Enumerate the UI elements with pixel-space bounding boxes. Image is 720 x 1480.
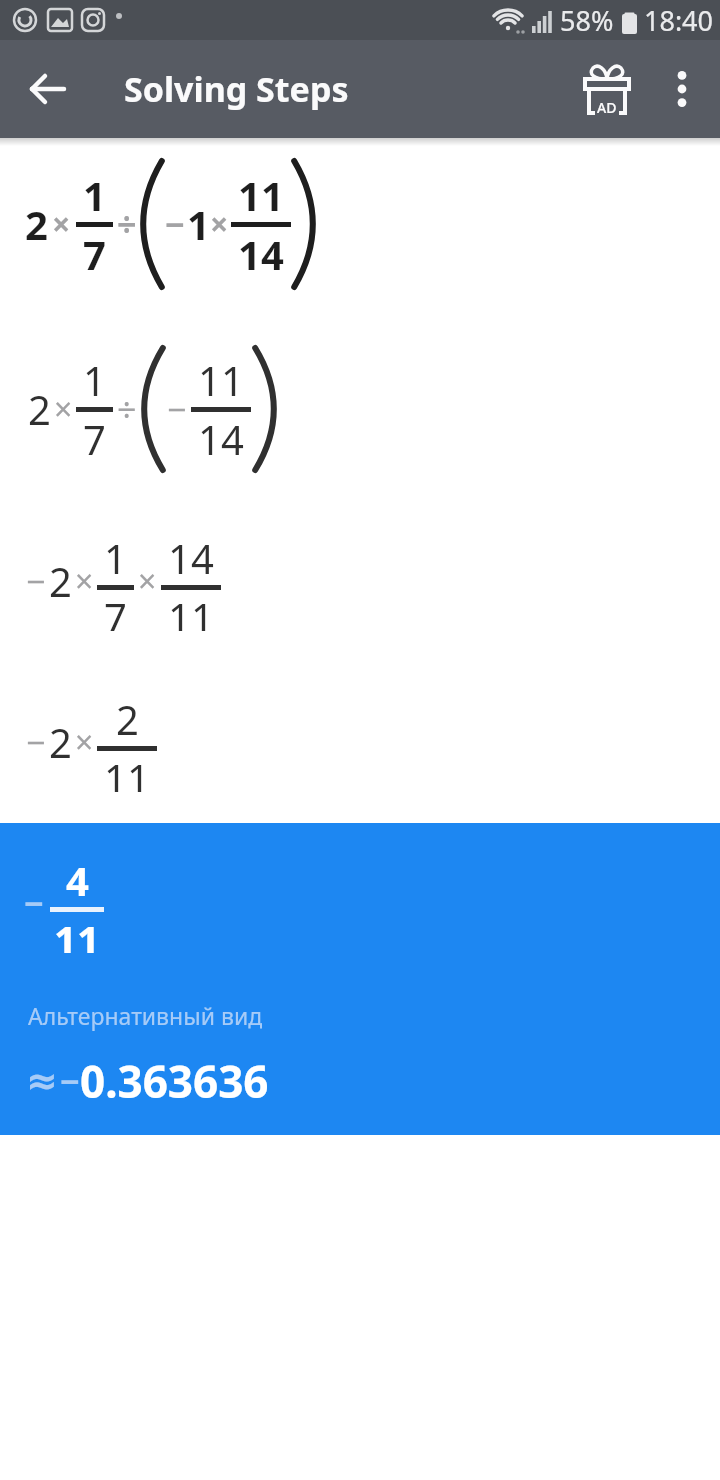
staticText: −: [165, 201, 185, 247]
staticText: Альтернативный вид: [28, 1000, 263, 1031]
staticText: 11: [198, 353, 244, 407]
staticText: −: [26, 558, 46, 604]
staticText: 11: [54, 912, 100, 953]
button[interactable]: AD: [576, 58, 638, 120]
staticText: 2: [49, 715, 72, 769]
staticText: 7: [83, 227, 106, 281]
staticText: −: [26, 719, 46, 765]
staticText: ×: [138, 559, 157, 603]
button[interactable]: [22, 63, 74, 115]
staticText: 2: [116, 692, 139, 746]
staticText: 11: [168, 590, 214, 631]
staticText: 11: [238, 168, 284, 222]
staticText: 2: [25, 197, 48, 251]
staticText: 0.363636: [80, 1051, 269, 1111]
staticText: 1: [104, 531, 127, 585]
staticText: ×: [210, 202, 229, 246]
staticText: Solving Steps: [124, 66, 349, 112]
staticText: ÷: [117, 201, 137, 247]
staticText: −: [60, 1058, 80, 1104]
staticText: ×: [75, 720, 94, 764]
staticText: 2: [28, 382, 51, 436]
staticText: 11: [104, 751, 150, 792]
staticText: 58%: [560, 2, 614, 39]
staticText: AD: [597, 98, 617, 117]
staticText: ÷: [117, 386, 137, 432]
staticText: −: [24, 880, 44, 926]
staticText: 14: [198, 412, 244, 466]
staticText: ≈: [26, 1059, 58, 1103]
staticText: 2: [49, 554, 72, 608]
staticText: 14: [238, 227, 284, 281]
button[interactable]: −: [0, 823, 720, 1135]
staticText: ×: [54, 387, 73, 431]
staticText: 7: [83, 412, 106, 466]
staticText: 18:40: [644, 2, 714, 39]
staticText: ×: [52, 202, 71, 246]
staticText: 1: [187, 197, 210, 251]
staticText: −: [167, 386, 187, 432]
staticText: 1: [83, 353, 106, 407]
staticText: 1: [83, 168, 106, 222]
staticText: 4: [66, 853, 89, 907]
staticText: 14: [168, 531, 214, 585]
staticText: 7: [104, 590, 127, 631]
staticText: ×: [75, 559, 94, 603]
button[interactable]: [660, 40, 704, 138]
